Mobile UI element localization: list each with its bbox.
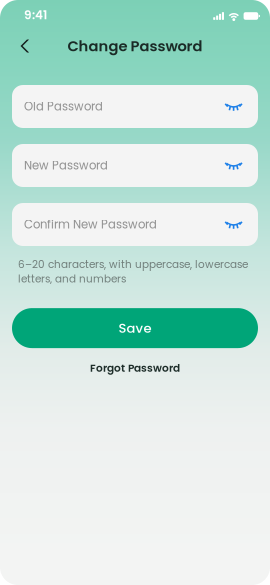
staticText: Change Password <box>67 36 202 56</box>
button[interactable]: Forgot Password <box>0 358 270 378</box>
staticText: New Password <box>24 157 108 174</box>
staticText: Save <box>118 319 151 337</box>
staticText: 9:41 <box>24 7 47 23</box>
button[interactable]: Back <box>10 31 42 61</box>
button[interactable]: Show Confirm New Password <box>221 211 247 237</box>
staticText: 6–20 characters, with uppercase, lowerca… <box>18 257 248 286</box>
staticText: Old Password <box>24 98 103 115</box>
staticText: Forgot Password <box>90 361 180 375</box>
button[interactable]: Show New Password <box>221 152 247 178</box>
staticText: Confirm New Password <box>24 216 157 233</box>
button[interactable]: Save <box>12 308 258 348</box>
button[interactable]: Show Old Password <box>221 93 247 119</box>
